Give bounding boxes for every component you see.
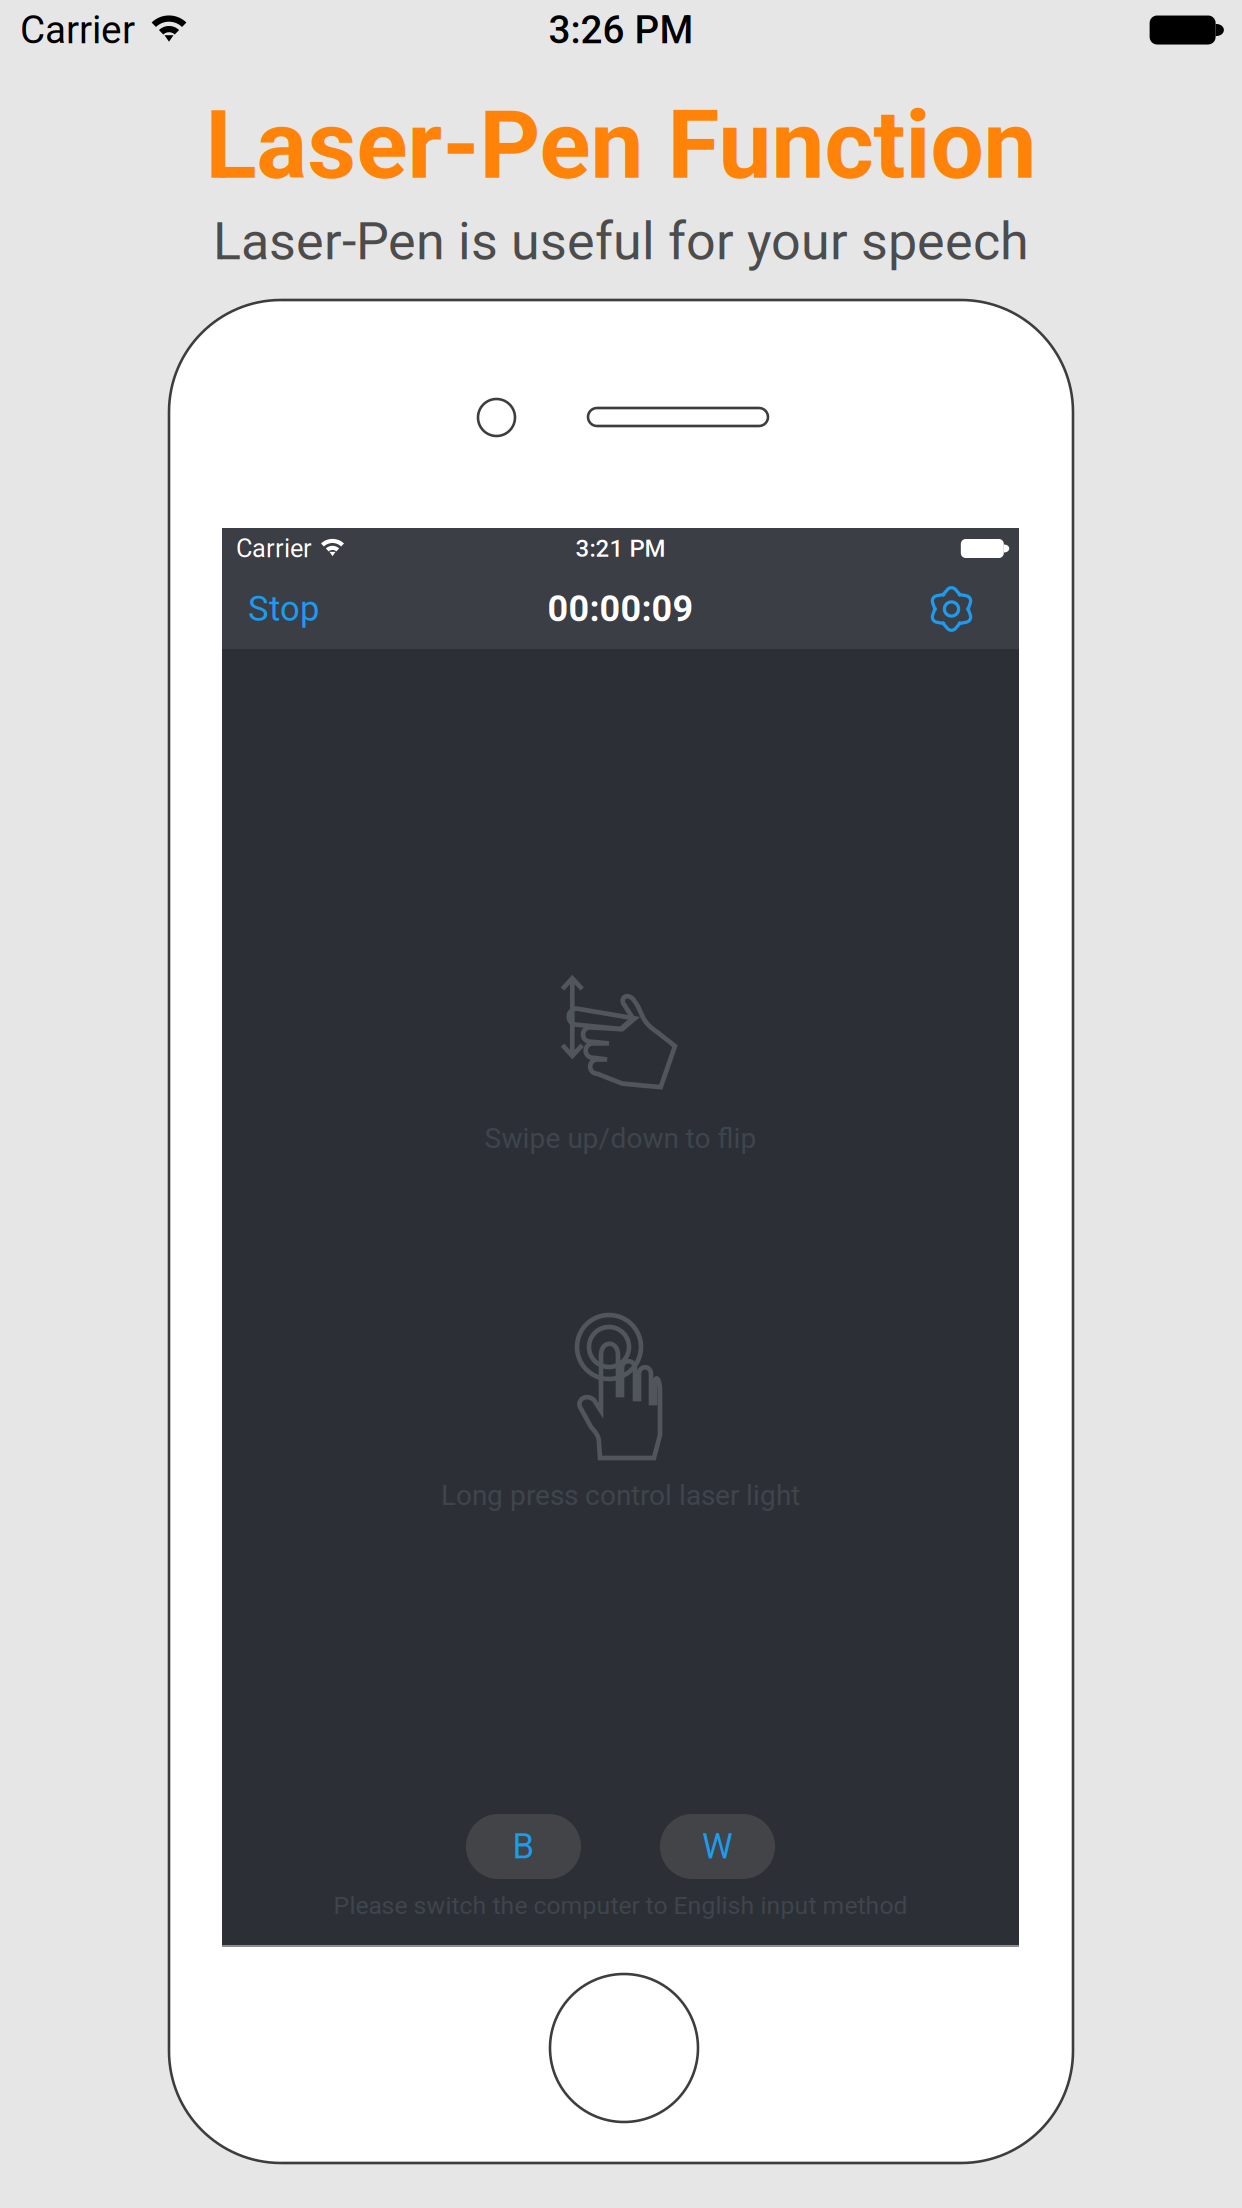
- staticText: Please switch the computer to English in…: [333, 1891, 907, 1920]
- button[interactable]: B: [466, 1814, 581, 1879]
- button[interactable]: W: [660, 1814, 775, 1879]
- staticText: Swipe up/down to flip: [484, 1122, 756, 1155]
- staticText: 3:26 PM: [548, 7, 693, 53]
- staticText: Carrier: [236, 534, 312, 563]
- staticText: Laser-Pen Function: [205, 90, 1036, 201]
- staticText: Stop: [248, 589, 319, 629]
- staticText: W: [702, 1826, 733, 1867]
- staticText: 00:00:09: [547, 588, 693, 630]
- button[interactable]: Stop: [242, 575, 325, 643]
- staticText: 3:21 PM: [575, 534, 665, 562]
- staticText: Laser-Pen is useful for your speech: [213, 211, 1029, 272]
- button[interactable]: Settings: [924, 573, 979, 644]
- staticText: B: [512, 1826, 534, 1867]
- staticText: Carrier: [20, 7, 135, 53]
- staticText: Long press control laser light: [441, 1479, 800, 1512]
